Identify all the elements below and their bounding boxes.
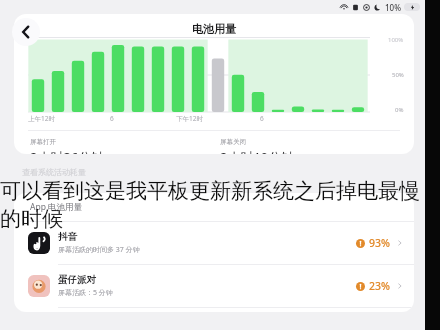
staticText: App 电池用量: [30, 201, 83, 213]
button[interactable]: 返回: [12, 18, 40, 46]
staticText: 下午12时: [176, 114, 203, 123]
staticText: 电池用量: [192, 22, 236, 36]
staticText: 6: [110, 114, 114, 123]
button[interactable]: 抖音: [14, 222, 414, 264]
staticText: 蛋仔派对: [58, 274, 96, 286]
staticText: 23%: [369, 279, 390, 293]
staticText: 屏幕关闭: [220, 138, 246, 146]
staticText: 屏幕打开: [30, 138, 56, 146]
staticText: 抖音: [58, 231, 77, 243]
staticText: 2小时36分钟: [30, 148, 105, 154]
staticText: 可以看到这是我平板更新新系统之后掉电最慢的时候: [0, 178, 440, 232]
staticText: 6: [260, 114, 264, 123]
staticText: 屏幕活跃的时间多 37 分钟: [58, 245, 140, 255]
staticText: 50%: [392, 71, 404, 79]
staticText: 上午12时: [28, 114, 55, 123]
staticText: 0%: [395, 106, 404, 114]
staticText: 查看系统活动耗量: [22, 167, 86, 177]
staticText: 10%: [385, 2, 401, 13]
button[interactable]: 蛋仔派对: [14, 265, 414, 307]
staticText: 屏幕活跃：5 分钟: [58, 288, 113, 298]
staticText: 100%: [388, 36, 404, 44]
staticText: 2小时19分钟: [220, 148, 295, 154]
button[interactable]: 100%: [14, 14, 414, 154]
staticText: 93%: [369, 236, 390, 250]
